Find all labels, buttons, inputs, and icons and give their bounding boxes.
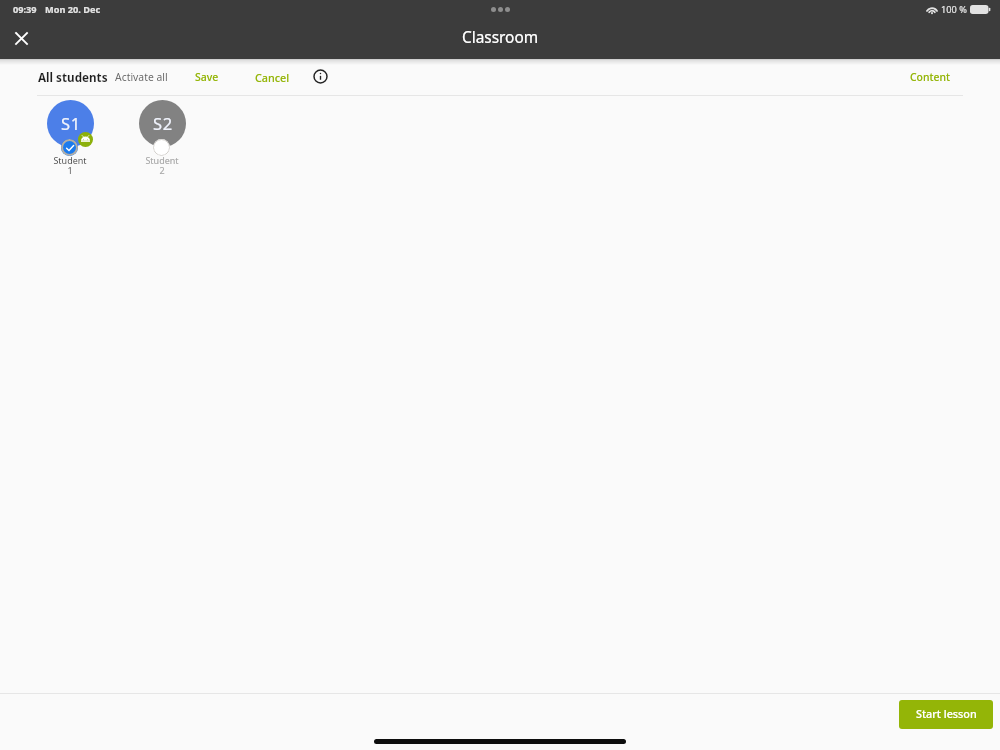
staticText: Save [195, 70, 219, 84]
staticText: Mon 20. Dec [45, 3, 101, 16]
button[interactable]: Info [310, 66, 330, 86]
button[interactable]: Cancel [255, 70, 290, 85]
staticText: Classroom [462, 27, 539, 48]
button[interactable]: Save [195, 70, 219, 84]
staticText: 1 [67, 164, 73, 176]
staticText: All students [38, 69, 108, 85]
staticText: S1 [61, 112, 81, 134]
button[interactable]: Content [910, 70, 950, 84]
staticText: Start lesson [916, 706, 977, 721]
staticText: Content [910, 70, 950, 84]
staticText: Student [53, 154, 87, 166]
staticText: S2 [153, 112, 173, 134]
staticText: Student [145, 154, 179, 166]
staticText: Activate all [115, 70, 168, 84]
staticText: 100 % [941, 3, 967, 16]
button[interactable]: S1 [24, 100, 116, 180]
staticText: Cancel [255, 70, 290, 85]
staticText: 2 [159, 164, 165, 176]
button[interactable]: Start lesson [899, 700, 993, 729]
button[interactable]: Activate all [115, 70, 168, 84]
button[interactable]: S2 [116, 100, 208, 180]
button[interactable]: Close [5, 22, 37, 54]
staticText: 09:39 [13, 3, 37, 16]
